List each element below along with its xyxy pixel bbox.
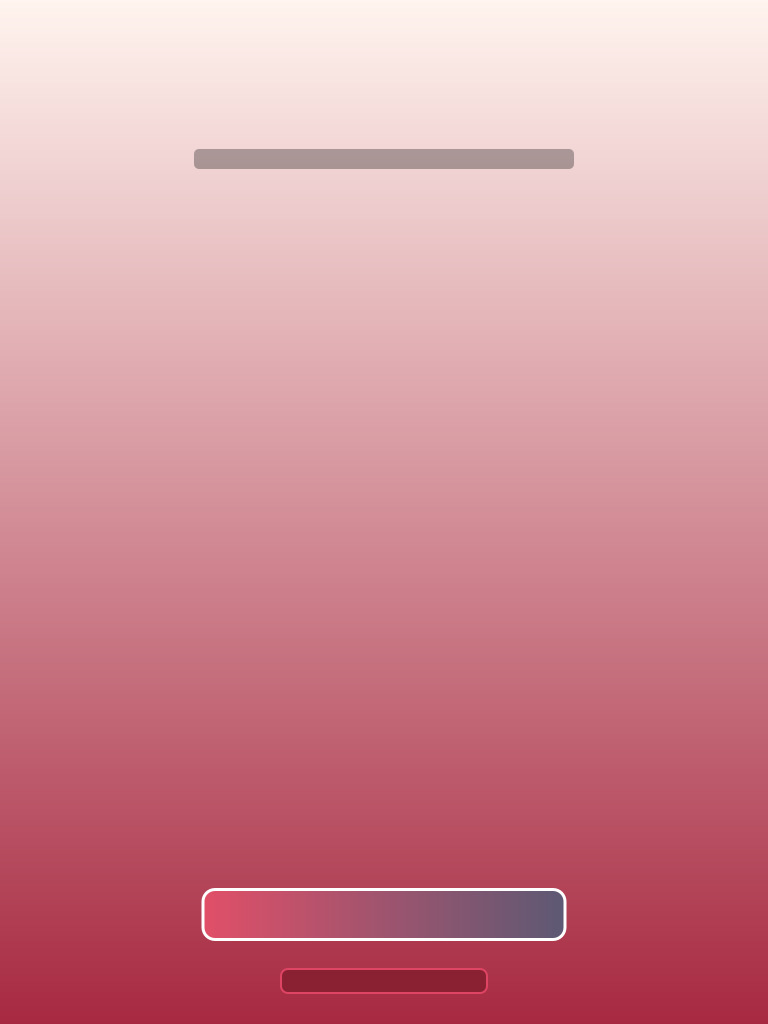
button[interactable]: Continue — [201, 888, 566, 941]
button[interactable]: Secondary action — [280, 968, 488, 994]
